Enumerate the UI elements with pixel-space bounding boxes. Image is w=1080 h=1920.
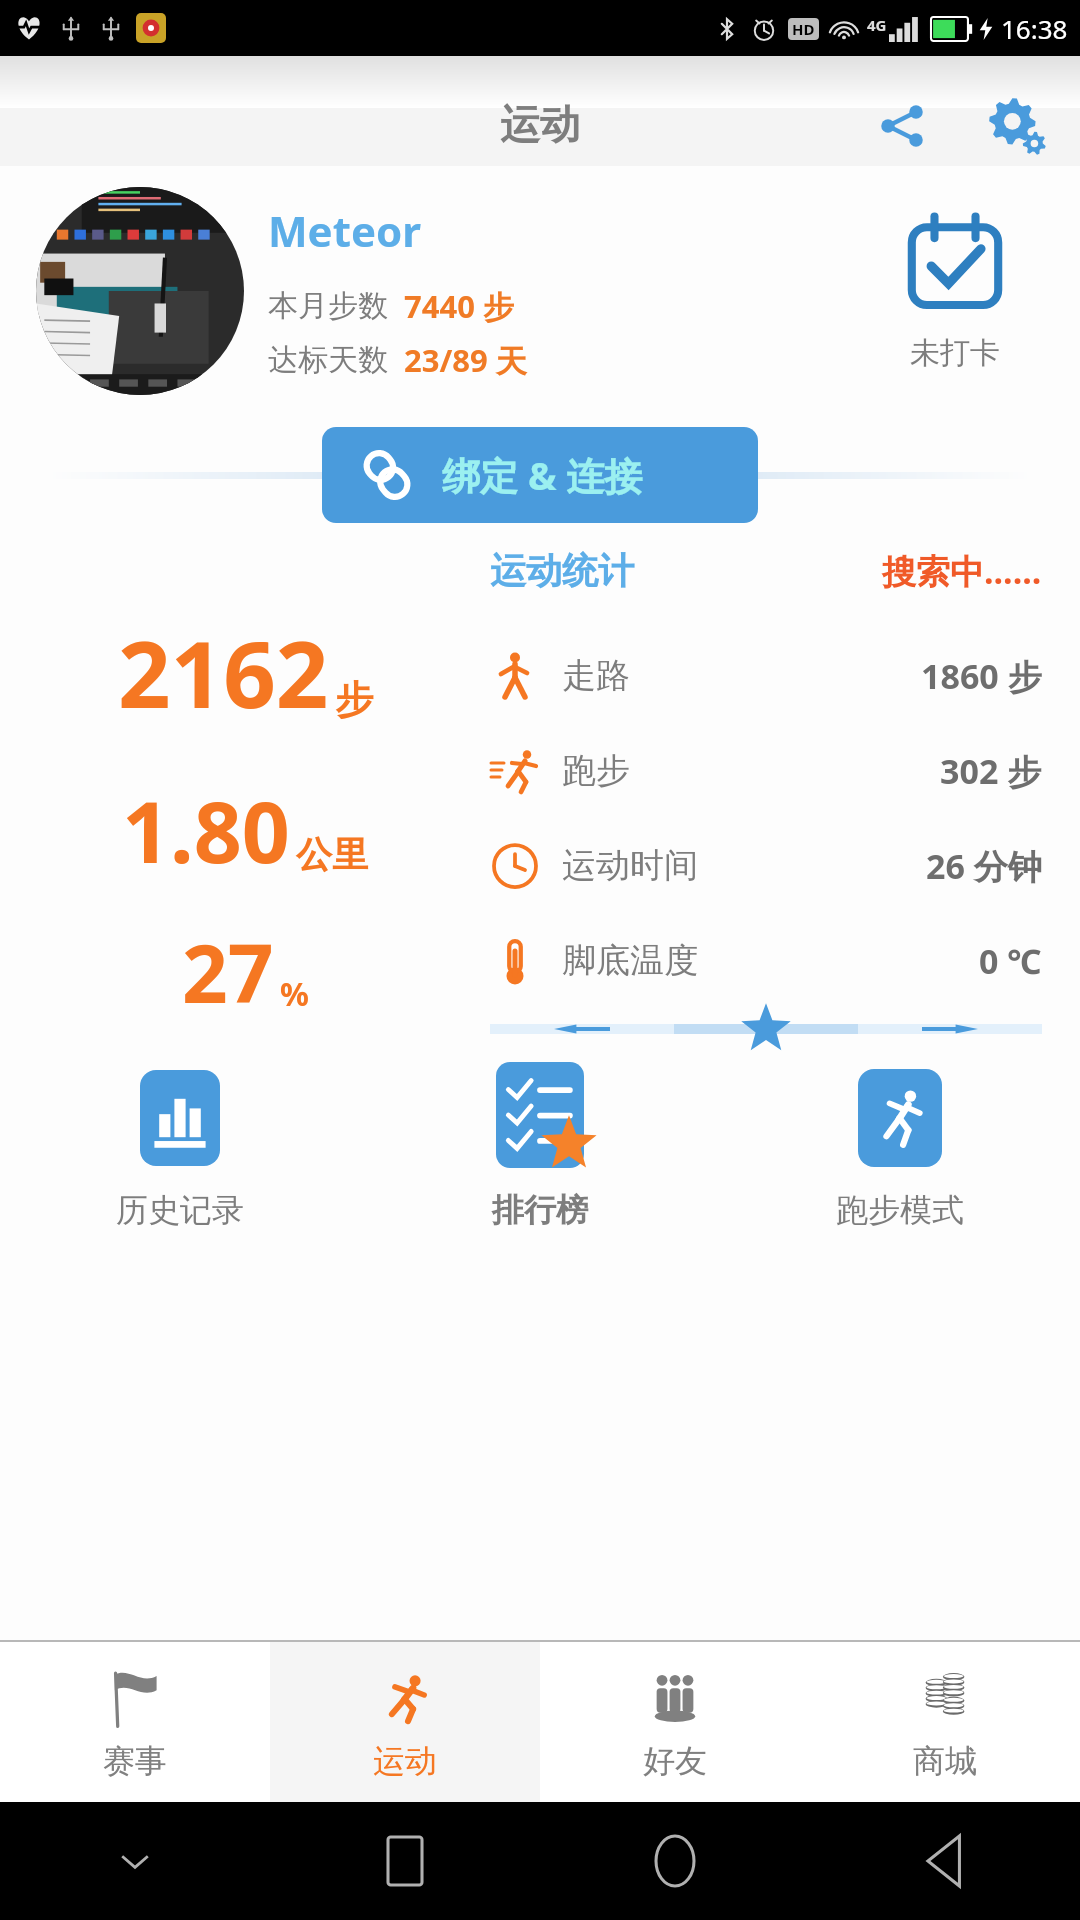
staticText: 运动 xyxy=(500,99,580,149)
staticText: 26 分钟 xyxy=(926,843,1042,889)
staticText: 0 ℃ xyxy=(979,938,1042,984)
staticText: 跑步模式 xyxy=(836,1190,964,1230)
staticText: 本月步数 xyxy=(268,287,388,325)
button[interactable]: 走路 xyxy=(490,628,1042,723)
staticText: 达标天数 xyxy=(268,341,388,379)
button[interactable]: 运动时间 xyxy=(490,818,1042,913)
button[interactable]: 跑步 xyxy=(490,723,1042,818)
staticText: 商城 xyxy=(913,1741,977,1781)
button[interactable]: 脚底温度 xyxy=(490,913,1042,1008)
staticText: 搜索中...... xyxy=(882,548,1042,594)
staticText: 4G xyxy=(867,15,887,35)
button[interactable]: 未打卡 xyxy=(830,210,1080,372)
button[interactable]: 运动 xyxy=(270,1642,540,1802)
staticText: 跑步 xyxy=(562,749,630,792)
staticText: 16:38 xyxy=(1001,11,1068,46)
staticText: 好友 xyxy=(643,1741,707,1781)
button[interactable]: 商城 xyxy=(810,1642,1080,1802)
staticText: 历史记录 xyxy=(116,1190,244,1230)
staticText: 23/89 天 xyxy=(404,339,527,381)
staticText: 运动时间 xyxy=(562,844,698,887)
button[interactable]: 绑定 & 连接 xyxy=(322,427,758,523)
button[interactable]: Favourite xyxy=(674,1024,858,1034)
staticText: % xyxy=(280,972,309,1016)
button[interactable]: Next xyxy=(858,1024,1042,1034)
staticText: 赛事 xyxy=(103,1741,167,1781)
button[interactable]: 排行榜 xyxy=(360,1044,720,1264)
staticText: 运动 xyxy=(373,1741,437,1781)
staticText: 脚底温度 xyxy=(562,939,698,982)
staticText: 公里 xyxy=(296,832,368,877)
staticText: 步 xyxy=(335,676,373,724)
staticText: 运动统计 xyxy=(490,548,634,593)
staticText: 1.80 xyxy=(122,773,290,887)
staticText: Meteor xyxy=(268,202,422,259)
button[interactable]: 跑步模式 xyxy=(720,1044,1080,1264)
button[interactable]: 历史记录 xyxy=(0,1044,360,1264)
staticText: 2162 xyxy=(118,610,329,735)
button[interactable]: 好友 xyxy=(540,1642,810,1802)
staticText: 排行榜 xyxy=(492,1190,588,1230)
staticText: 27 xyxy=(182,917,274,1026)
staticText: 1860 步 xyxy=(921,653,1042,699)
staticText: 7440 步 xyxy=(404,285,514,327)
button[interactable]: Previous xyxy=(490,1024,674,1034)
staticText: 走路 xyxy=(562,654,630,697)
staticText: HD xyxy=(792,19,815,39)
staticText: 未打卡 xyxy=(910,334,1000,372)
button[interactable]: Share xyxy=(870,94,934,158)
staticText: 302 步 xyxy=(940,748,1042,794)
staticText: 绑定 & 连接 xyxy=(442,449,643,501)
button[interactable]: Settings xyxy=(982,91,1052,161)
button[interactable]: 赛事 xyxy=(0,1642,270,1802)
button[interactable]: Meteor xyxy=(0,166,1080,416)
